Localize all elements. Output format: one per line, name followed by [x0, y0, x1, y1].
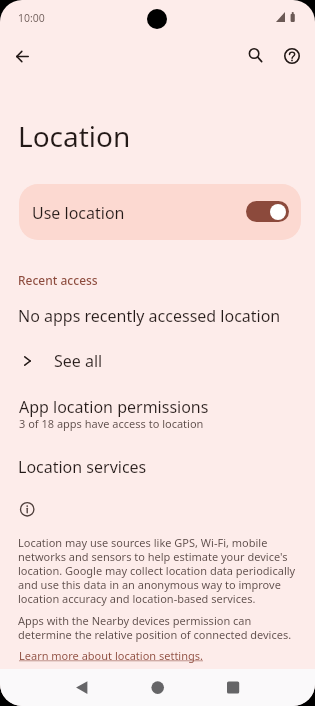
staticText: 3 of 18 apps have access to location [19, 416, 204, 431]
staticText: Recent access [18, 272, 98, 288]
staticText: Location services [18, 456, 147, 478]
button[interactable]: Information [19, 500, 37, 518]
staticText: Use location [32, 202, 125, 224]
staticText: See all [54, 350, 103, 372]
staticText: Learn more about location settings. [19, 648, 203, 663]
button[interactable]: Use location [19, 184, 301, 240]
staticText: Location [18, 117, 131, 155]
staticText: Apps with the Nearby devices permission … [18, 613, 298, 642]
button[interactable]: See all [0, 345, 315, 377]
button[interactable]: Home [135, 669, 180, 706]
staticText: 10:00 [18, 11, 45, 25]
staticText: App location permissions [19, 396, 209, 418]
button[interactable]: Back [57, 669, 102, 706]
button[interactable]: App location permissions [0, 396, 315, 434]
button[interactable]: Learn more about location settings. [19, 648, 203, 663]
staticText: No apps recently accessed location [18, 305, 281, 327]
staticText: Location may use sources like GPS, Wi-Fi… [18, 535, 298, 606]
button[interactable]: Help [272, 36, 312, 76]
button[interactable]: Recent apps [211, 669, 256, 706]
button[interactable]: Search [233, 36, 273, 76]
button[interactable]: Back [2, 36, 42, 76]
